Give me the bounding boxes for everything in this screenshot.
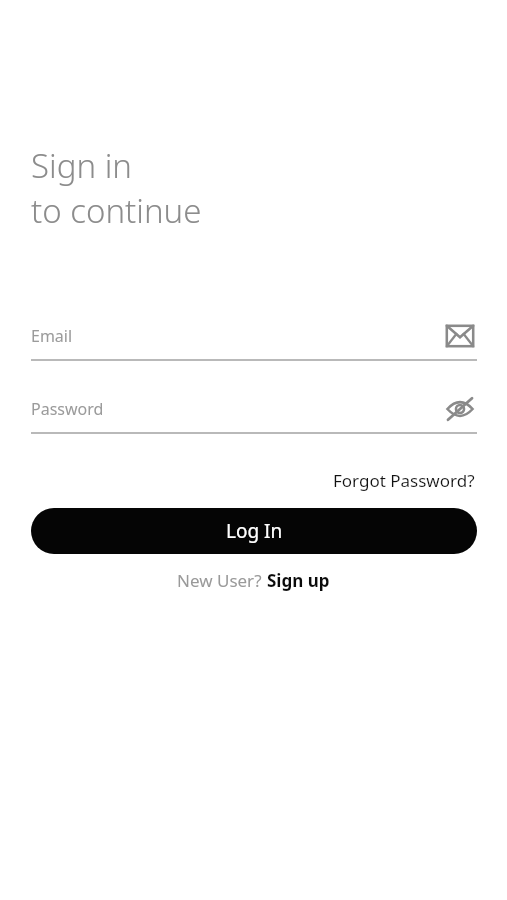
staticText: Email — [31, 325, 73, 347]
button[interactable]: Sign up — [266, 567, 331, 594]
button[interactable]: Password — [31, 390, 477, 428]
staticText: New User? — [177, 569, 266, 592]
staticText: Forgot Password? — [333, 469, 475, 492]
button[interactable]: Email — [443, 319, 477, 353]
staticText: Log In — [226, 518, 283, 544]
staticText: to continue — [31, 188, 202, 233]
staticText: Password — [31, 398, 104, 420]
button[interactable]: Show password — [443, 392, 477, 426]
staticText: Sign in — [31, 143, 132, 188]
button[interactable]: Log In — [31, 508, 477, 554]
button[interactable]: Email — [31, 317, 477, 355]
staticText: Sign up — [267, 569, 330, 592]
button[interactable]: Forgot Password? — [331, 466, 477, 495]
